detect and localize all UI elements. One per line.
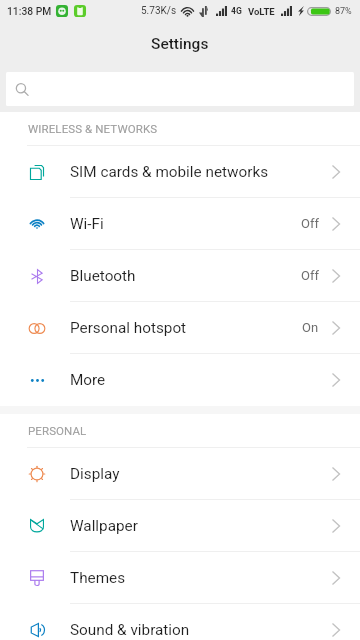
staticText: SIM cards & mobile networks [70,163,269,181]
staticText: VoLTE [248,6,275,17]
staticText: On [302,320,319,335]
staticText: PERSONAL [28,424,87,437]
staticText: More [70,371,106,389]
staticText: Wi-Fi [70,215,104,233]
button[interactable]: Display [0,448,360,500]
staticText: Sound & vibration [70,621,190,639]
staticText: 11:38 PM [7,5,52,17]
staticText: 4G [231,6,242,16]
staticText: Themes [70,569,126,587]
button[interactable]: SIM cards & mobile networks [0,146,360,198]
button[interactable]: Wallpaper [0,500,360,552]
button[interactable]: Sound & vibration [0,604,360,640]
button[interactable]: Search settings [6,72,354,106]
staticText: Display [70,465,120,483]
staticText: 5.73K/s [141,5,177,17]
button[interactable]: Wi-Fi [0,198,360,250]
staticText: WIRELESS & NETWORKS [28,122,158,135]
staticText: Wallpaper [70,517,138,535]
button[interactable]: More [0,354,360,406]
staticText: Personal hotspot [70,319,187,337]
staticText: Off [301,268,319,283]
staticText: Bluetooth [70,267,136,285]
button[interactable]: Bluetooth [0,250,360,302]
staticText: 87% [335,6,352,17]
staticText: Off [301,216,319,231]
button[interactable]: Personal hotspot [0,302,360,354]
staticText: Settings [151,35,209,53]
button[interactable]: Themes [0,552,360,604]
